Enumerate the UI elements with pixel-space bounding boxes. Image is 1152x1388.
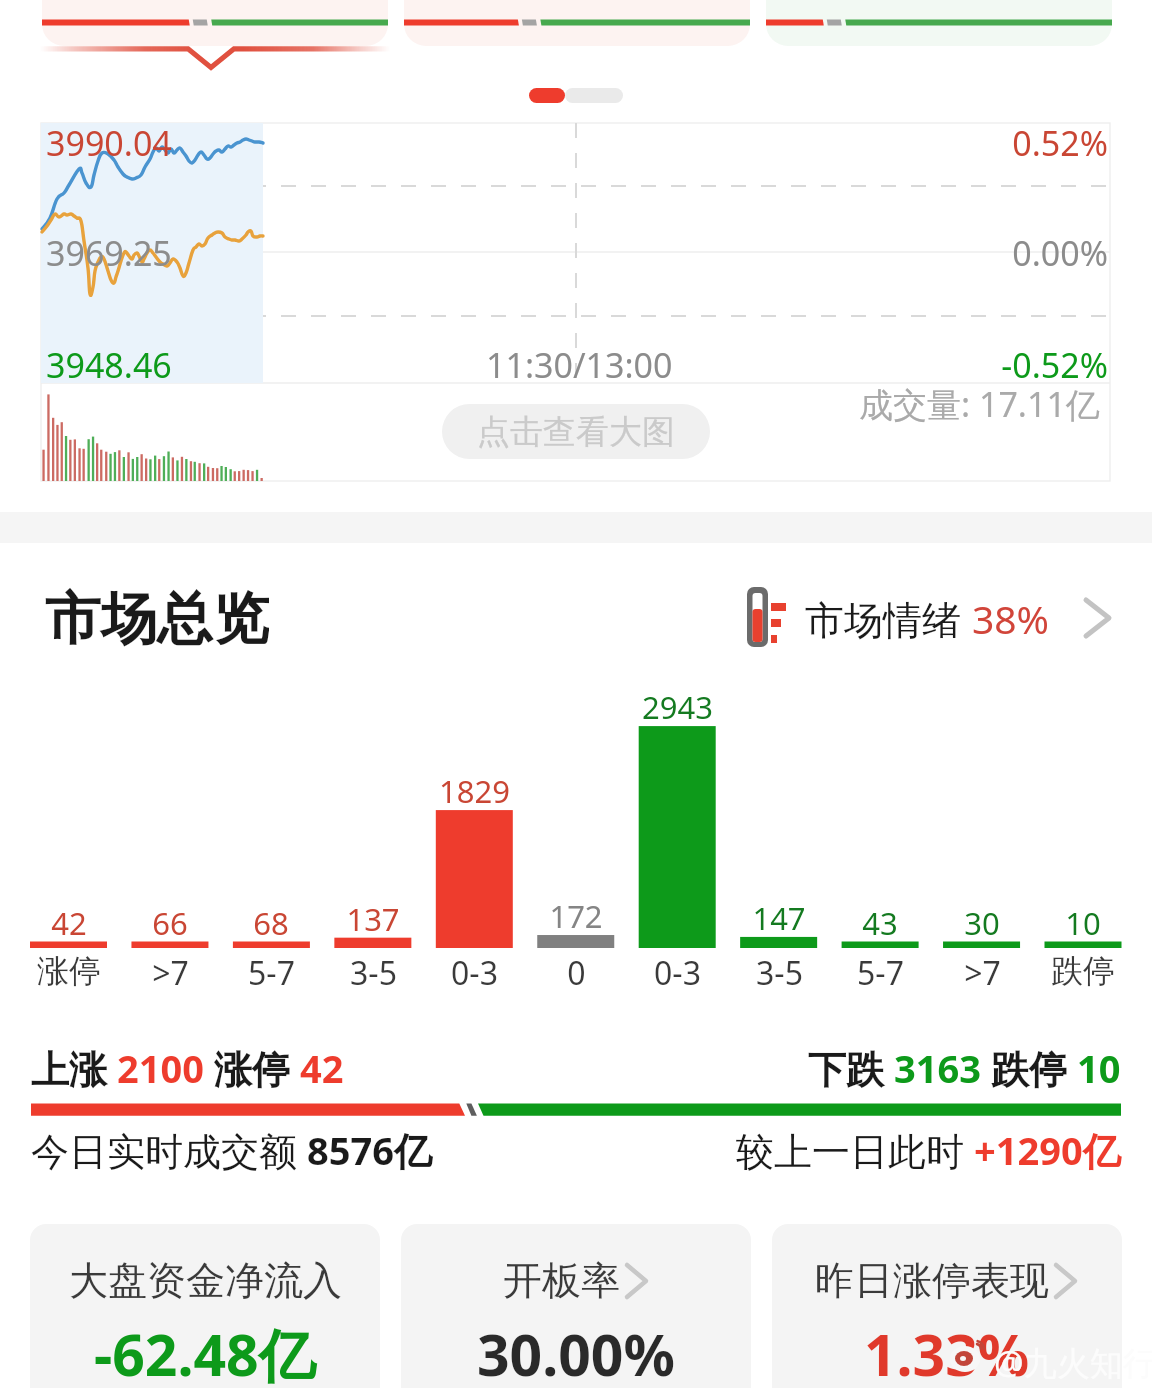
staticText: >7 <box>152 951 189 995</box>
button[interactable]: 3-5 147 <box>728 690 829 990</box>
staticText: 1.33% <box>864 1315 1030 1388</box>
button[interactable]: 0-3 2943 <box>626 690 727 990</box>
button[interactable]: 0-3 1829 <box>424 690 525 990</box>
staticText: 3-5 <box>350 951 397 995</box>
staticText: 10 <box>1065 902 1101 944</box>
staticText: 0.52% <box>1012 120 1108 166</box>
staticText: 42 <box>51 902 87 944</box>
staticText: 172 <box>549 895 603 937</box>
button[interactable]: 3-5 137 <box>322 690 423 990</box>
staticText: 较上一日此时 <box>736 1124 974 1176</box>
button[interactable]: 上证指数 <box>42 0 388 47</box>
staticText: 0.00% <box>1012 230 1108 276</box>
button[interactable]: >7 66 <box>119 690 220 990</box>
staticText: 3163 <box>894 1042 991 1094</box>
staticText: @九火知行 <box>994 1340 1152 1385</box>
button[interactable]: 跌停 10 <box>1032 690 1133 990</box>
staticText: 3990.04 <box>46 120 172 166</box>
button[interactable]: 市场情绪 <box>747 583 1114 653</box>
button[interactable]: Page indicator <box>529 88 623 103</box>
button[interactable]: 涨停 42 <box>18 690 119 990</box>
staticText: 跌停 <box>991 1042 1077 1094</box>
staticText: 跌停 <box>1051 951 1115 991</box>
staticText: 3969.25 <box>46 230 172 276</box>
button[interactable]: >7 30 <box>931 690 1032 990</box>
staticText: >7 <box>964 951 1001 995</box>
staticText: 68 <box>253 902 289 944</box>
staticText: 成交量: 17.11亿 <box>859 381 1100 427</box>
staticText: 2100 <box>117 1042 214 1094</box>
staticText: 下跌 <box>808 1042 894 1094</box>
staticText: 市场情绪 <box>805 592 972 645</box>
button[interactable]: 分时走势图 <box>41 123 1110 481</box>
staticText: 42 <box>300 1042 344 1094</box>
staticText: 8576亿 <box>307 1124 432 1176</box>
button[interactable]: 0 172 <box>525 690 626 990</box>
staticText: 3948.46 <box>46 342 172 388</box>
staticText: +1290亿 <box>974 1124 1121 1176</box>
button[interactable]: 点击查看大图 <box>442 404 710 459</box>
button[interactable]: 5-7 68 <box>221 690 322 990</box>
staticText: 0 <box>567 951 586 995</box>
staticText: 3-5 <box>756 951 803 995</box>
staticText: 涨停 <box>37 951 101 991</box>
staticText: 昨日涨停表现 <box>815 1256 1049 1305</box>
button[interactable]: 大盘资金净流入 <box>30 1224 380 1388</box>
staticText: 上涨 <box>31 1042 117 1094</box>
staticText: 66 <box>152 902 188 944</box>
button[interactable]: 5-7 43 <box>829 690 930 990</box>
staticText: 大盘资金净流入 <box>69 1256 342 1305</box>
staticText: 147 <box>752 897 806 939</box>
staticText: 市场总览 <box>45 584 269 654</box>
staticText: 涨停 <box>214 1042 300 1094</box>
staticText: 开板率 <box>503 1256 620 1305</box>
staticText: 0-3 <box>654 951 701 995</box>
button[interactable]: 昨日涨停表现 <box>772 1224 1122 1388</box>
staticText: 30.00% <box>477 1315 675 1388</box>
staticText: -62.48亿 <box>94 1315 316 1388</box>
staticText: 137 <box>346 898 400 940</box>
staticText: 43 <box>862 902 898 944</box>
staticText: 11:30/13:00 <box>486 342 673 388</box>
button[interactable]: 深证成指 <box>404 0 750 47</box>
staticText: 38% <box>972 592 1050 645</box>
staticText: 点击查看大图 <box>477 411 675 453</box>
staticText: 0-3 <box>451 951 498 995</box>
staticText: 今日实时成交额 <box>31 1124 307 1176</box>
staticText: -0.52% <box>1001 342 1108 388</box>
staticText: 30 <box>964 902 1000 944</box>
staticText: 5-7 <box>248 951 295 995</box>
button[interactable]: 创业板指 <box>766 0 1112 47</box>
staticText: 1829 <box>439 770 510 812</box>
staticText: 10 <box>1077 1042 1121 1094</box>
staticText: 5-7 <box>857 951 904 995</box>
staticText: 2943 <box>642 686 713 728</box>
button[interactable]: 开板率 <box>401 1224 751 1388</box>
